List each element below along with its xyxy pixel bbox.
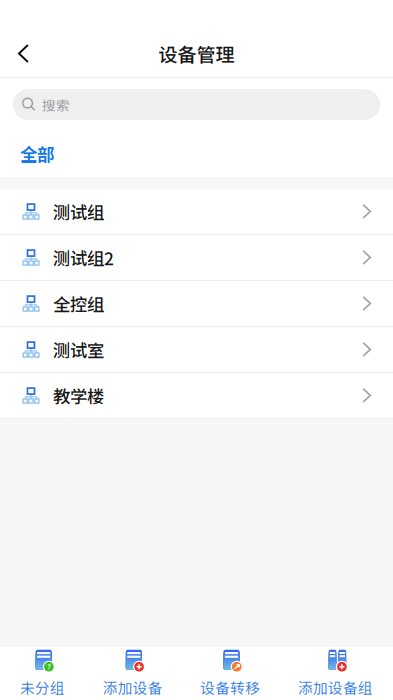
staticText: 测试组 [53, 199, 104, 224]
staticText: 未分组 [20, 677, 65, 698]
staticText: 添加设备 [103, 677, 163, 698]
button[interactable]: 教学楼 [0, 373, 393, 419]
staticText: 全控组 [53, 291, 104, 316]
staticText: 搜索 [42, 95, 70, 114]
staticText: 测试室 [53, 337, 104, 362]
button[interactable]: 测试组 [0, 189, 393, 235]
button[interactable]: 设备转移 [200, 649, 260, 698]
button[interactable]: Back [0, 32, 49, 75]
staticText: ? [47, 662, 50, 671]
staticText: 全部 [20, 141, 54, 166]
staticText: 设备管理 [158, 40, 234, 67]
button[interactable]: 添加设备 [103, 649, 163, 698]
staticText: 添加设备组 [298, 677, 373, 698]
staticText: 教学楼 [53, 383, 104, 408]
staticText: 测试组2 [53, 245, 114, 270]
button[interactable]: ? [20, 649, 65, 698]
button[interactable]: 测试组2 [0, 235, 393, 281]
staticText: 设备转移 [200, 677, 260, 698]
button[interactable]: 全控组 [0, 281, 393, 327]
button[interactable]: 添加设备组 [298, 649, 373, 698]
button[interactable]: 测试室 [0, 327, 393, 373]
